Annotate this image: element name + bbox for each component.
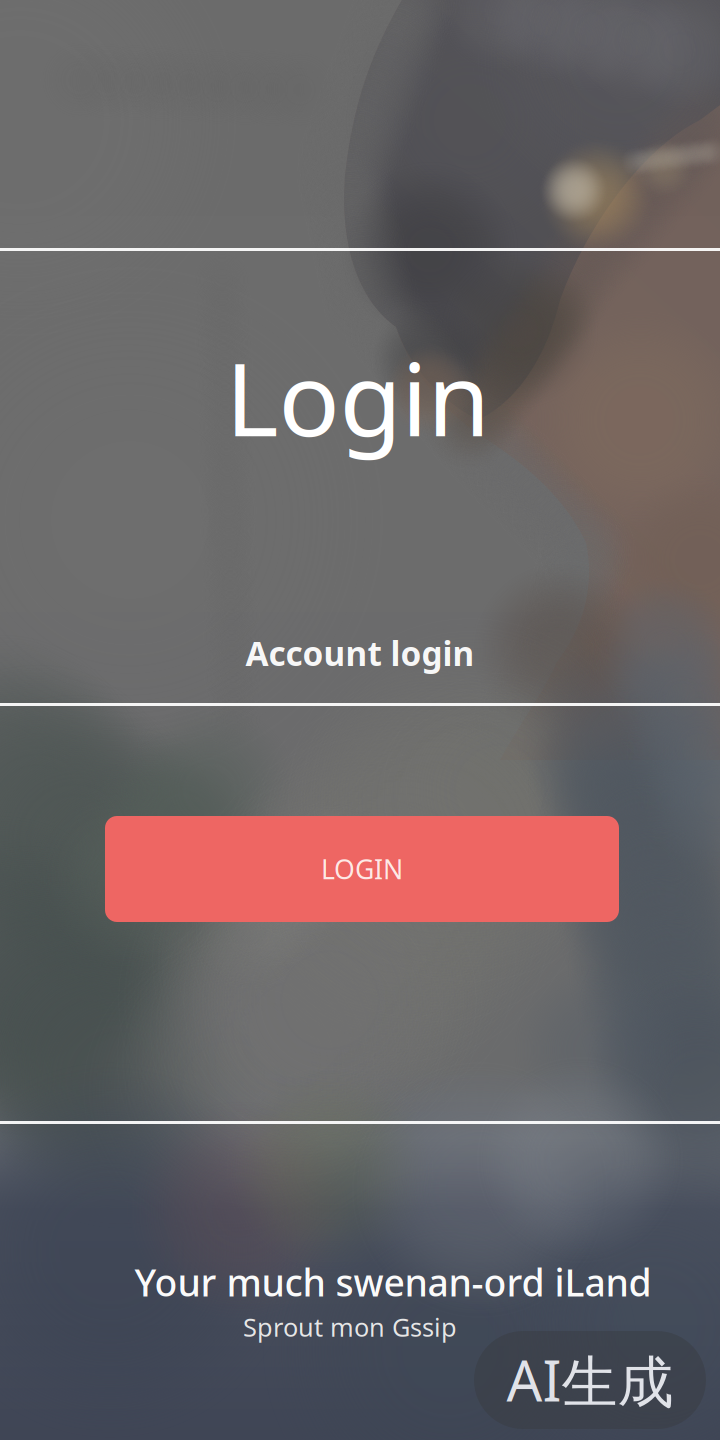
button[interactable]: LOGIN <box>105 816 619 922</box>
staticText: LOGIN <box>321 851 403 887</box>
staticText: Your much swenan-ord iLand <box>134 1257 651 1307</box>
staticText: AI生成 <box>506 1343 673 1417</box>
staticText: Account login <box>245 631 474 675</box>
staticText: Sprout mon Gssip <box>243 1310 457 1344</box>
staticText: Login <box>225 330 490 464</box>
